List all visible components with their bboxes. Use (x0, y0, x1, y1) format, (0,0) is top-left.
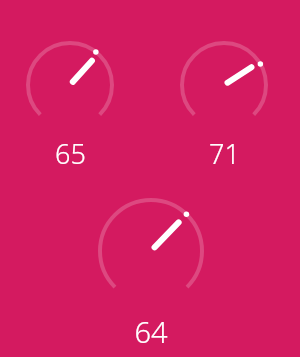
button[interactable]: Gauge 64 (98, 198, 204, 351)
staticText: 64 (134, 312, 168, 351)
button[interactable]: Gauge 71 (180, 41, 268, 172)
button[interactable]: Gauge 65 (26, 41, 114, 172)
staticText: 71 (209, 135, 240, 172)
staticText: 65 (55, 135, 86, 172)
